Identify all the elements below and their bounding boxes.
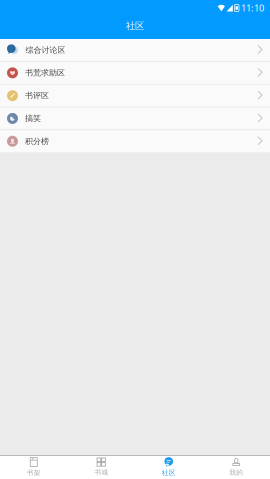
button[interactable]: 综合讨论区: [0, 39, 270, 61]
staticText: 积分榜: [25, 136, 49, 146]
button[interactable]: 积分榜: [0, 130, 270, 152]
button[interactable]: 书评区: [0, 85, 270, 107]
button[interactable]: 搞笑: [0, 107, 270, 129]
button[interactable]: 书城: [67, 455, 135, 479]
staticText: 综合讨论区: [25, 45, 65, 55]
button[interactable]: 书荒求助区: [0, 62, 270, 84]
staticText: 社区: [126, 20, 144, 32]
staticText: 社区: [162, 469, 176, 477]
staticText: 书评区: [25, 91, 49, 100]
staticText: 书荒求助区: [25, 68, 65, 78]
button[interactable]: 社区: [135, 455, 202, 479]
staticText: 搞笑: [25, 113, 41, 123]
button[interactable]: 我的: [202, 455, 270, 479]
staticText: 书城: [94, 468, 108, 476]
button[interactable]: 书架: [0, 455, 67, 479]
staticText: 书架: [27, 469, 41, 477]
staticText: 11:10: [241, 2, 264, 14]
staticText: 我的: [229, 468, 243, 477]
